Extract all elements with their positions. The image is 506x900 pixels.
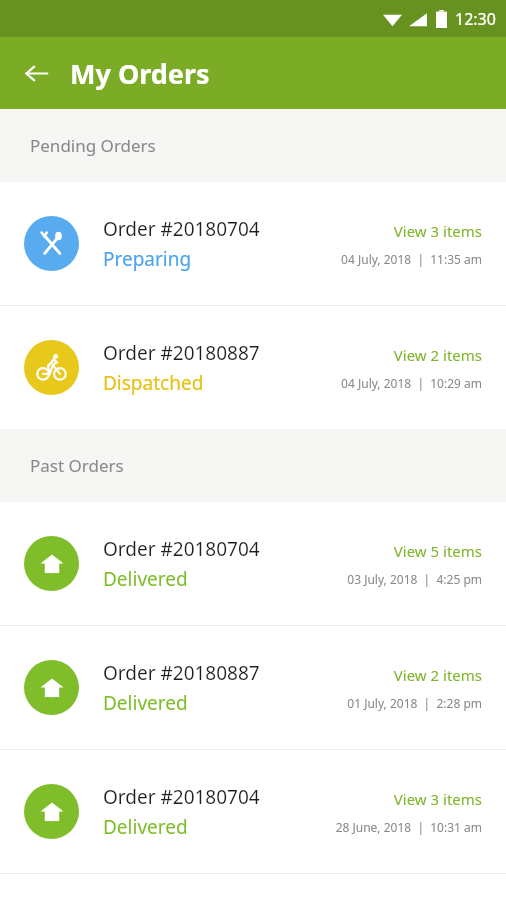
staticText: Order #20180887 [103,660,260,686]
button[interactable]: Order #20180887 [0,306,506,429]
staticText: 28 June, 2018 | 10:31 am [335,819,482,835]
staticText: Order #20180887 [103,340,260,366]
staticText: Order #20180704 [103,536,260,562]
staticText: Delivered [103,814,188,840]
staticText: Dispatched [103,370,204,396]
staticText: Order #20180704 [103,784,260,810]
staticText: Preparing [103,246,192,272]
staticText: 12:30 [455,8,496,30]
staticText: View 2 items [393,345,482,365]
button[interactable]: Order #20180704 [0,502,506,625]
staticText: View 5 items [393,541,482,561]
staticText: 01 July, 2018 | 2:28 pm [347,695,482,711]
button[interactable]: Order #20180704 [0,182,506,305]
staticText: Past Orders [30,454,124,477]
staticText: View 3 items [393,789,482,809]
staticText: View 3 items [393,221,482,241]
staticText: Delivered [103,566,188,592]
staticText: Delivered [103,690,188,716]
staticText: 03 July, 2018 | 4:25 pm [347,571,482,587]
staticText: Order #20180704 [103,216,260,242]
staticText: View 2 items [393,665,482,685]
staticText: 04 July, 2018 | 10:29 am [341,375,482,391]
staticText: Pending Orders [30,134,156,157]
button[interactable]: Back [14,51,58,95]
button[interactable]: Order #20180887 [0,626,506,749]
button[interactable]: Order #20180704 [0,750,506,873]
staticText: My Orders [70,55,210,92]
staticText: 04 July, 2018 | 11:35 am [341,251,482,267]
